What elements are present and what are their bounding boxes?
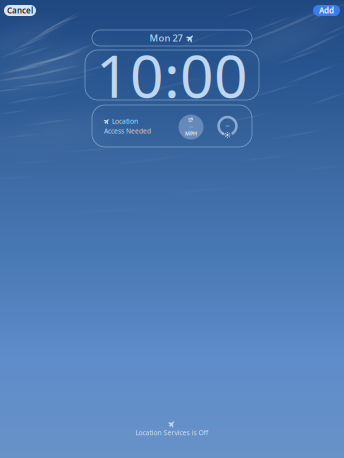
staticText: -- bbox=[189, 123, 193, 130]
staticText: Add bbox=[319, 5, 334, 16]
button[interactable]: -- bbox=[178, 114, 203, 139]
staticText: Mon 27 bbox=[149, 32, 182, 44]
button[interactable]: 10:00 bbox=[85, 50, 259, 100]
button[interactable]: Mon 27 bbox=[92, 30, 252, 46]
staticText: Access Needed bbox=[104, 126, 151, 135]
staticText: Location Services is Off bbox=[135, 428, 208, 437]
staticText: 10:00 bbox=[96, 36, 248, 114]
staticText: Location bbox=[112, 117, 138, 125]
button[interactable]: Add bbox=[313, 5, 340, 16]
staticText: Cancel bbox=[7, 5, 33, 16]
staticText: -- bbox=[225, 121, 229, 129]
button[interactable]: Location bbox=[104, 114, 164, 138]
button[interactable]: Cancel bbox=[4, 5, 36, 16]
button[interactable]: -- bbox=[215, 113, 240, 138]
staticText: MPH bbox=[185, 130, 197, 137]
